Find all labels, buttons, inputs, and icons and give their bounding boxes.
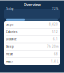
staticText: 1.4 L bbox=[51, 60, 58, 63]
staticText: 7h 20m bbox=[47, 45, 58, 48]
staticText: 72% bbox=[52, 7, 58, 11]
staticText: Heart bbox=[6, 52, 13, 56]
staticText: Overview bbox=[23, 2, 40, 7]
staticText: 68 bbox=[54, 52, 58, 56]
staticText: Distance bbox=[6, 37, 17, 41]
staticText: Calories bbox=[6, 30, 17, 34]
staticText: Water bbox=[6, 60, 13, 63]
button[interactable]: Distance bbox=[4, 36, 60, 43]
staticText: 8,420 bbox=[49, 23, 58, 26]
staticText: 6.1 bbox=[53, 37, 58, 41]
staticText: Sleep bbox=[6, 45, 14, 48]
button[interactable]: Water bbox=[4, 58, 60, 65]
staticText: Today bbox=[6, 7, 13, 11]
staticText: 512 bbox=[52, 30, 58, 34]
button[interactable]: Today bbox=[0, 9, 64, 19]
button[interactable]: Calories bbox=[4, 28, 60, 35]
staticText: Steps bbox=[6, 23, 13, 26]
button[interactable]: Heart bbox=[4, 51, 60, 58]
button[interactable]: Steps bbox=[4, 21, 60, 28]
button[interactable]: Sleep bbox=[4, 43, 60, 50]
